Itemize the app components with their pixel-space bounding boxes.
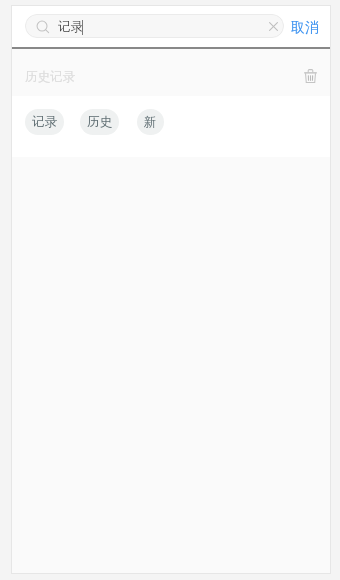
- staticText: 取消: [291, 19, 319, 37]
- button[interactable]: 取消: [289, 13, 321, 41]
- button[interactable]: 记录: [25, 14, 284, 38]
- staticText: 历史: [87, 114, 112, 130]
- button[interactable]: 记录: [25, 109, 64, 135]
- button[interactable]: 历史: [80, 109, 119, 135]
- staticText: 新: [144, 114, 157, 130]
- button[interactable]: Clear: [266, 19, 280, 33]
- staticText: 记录: [58, 19, 83, 35]
- staticText: 记录: [32, 114, 57, 130]
- button[interactable]: Clear history: [296, 59, 324, 87]
- staticText: 历史记录: [25, 69, 75, 85]
- button[interactable]: 新: [137, 109, 164, 135]
